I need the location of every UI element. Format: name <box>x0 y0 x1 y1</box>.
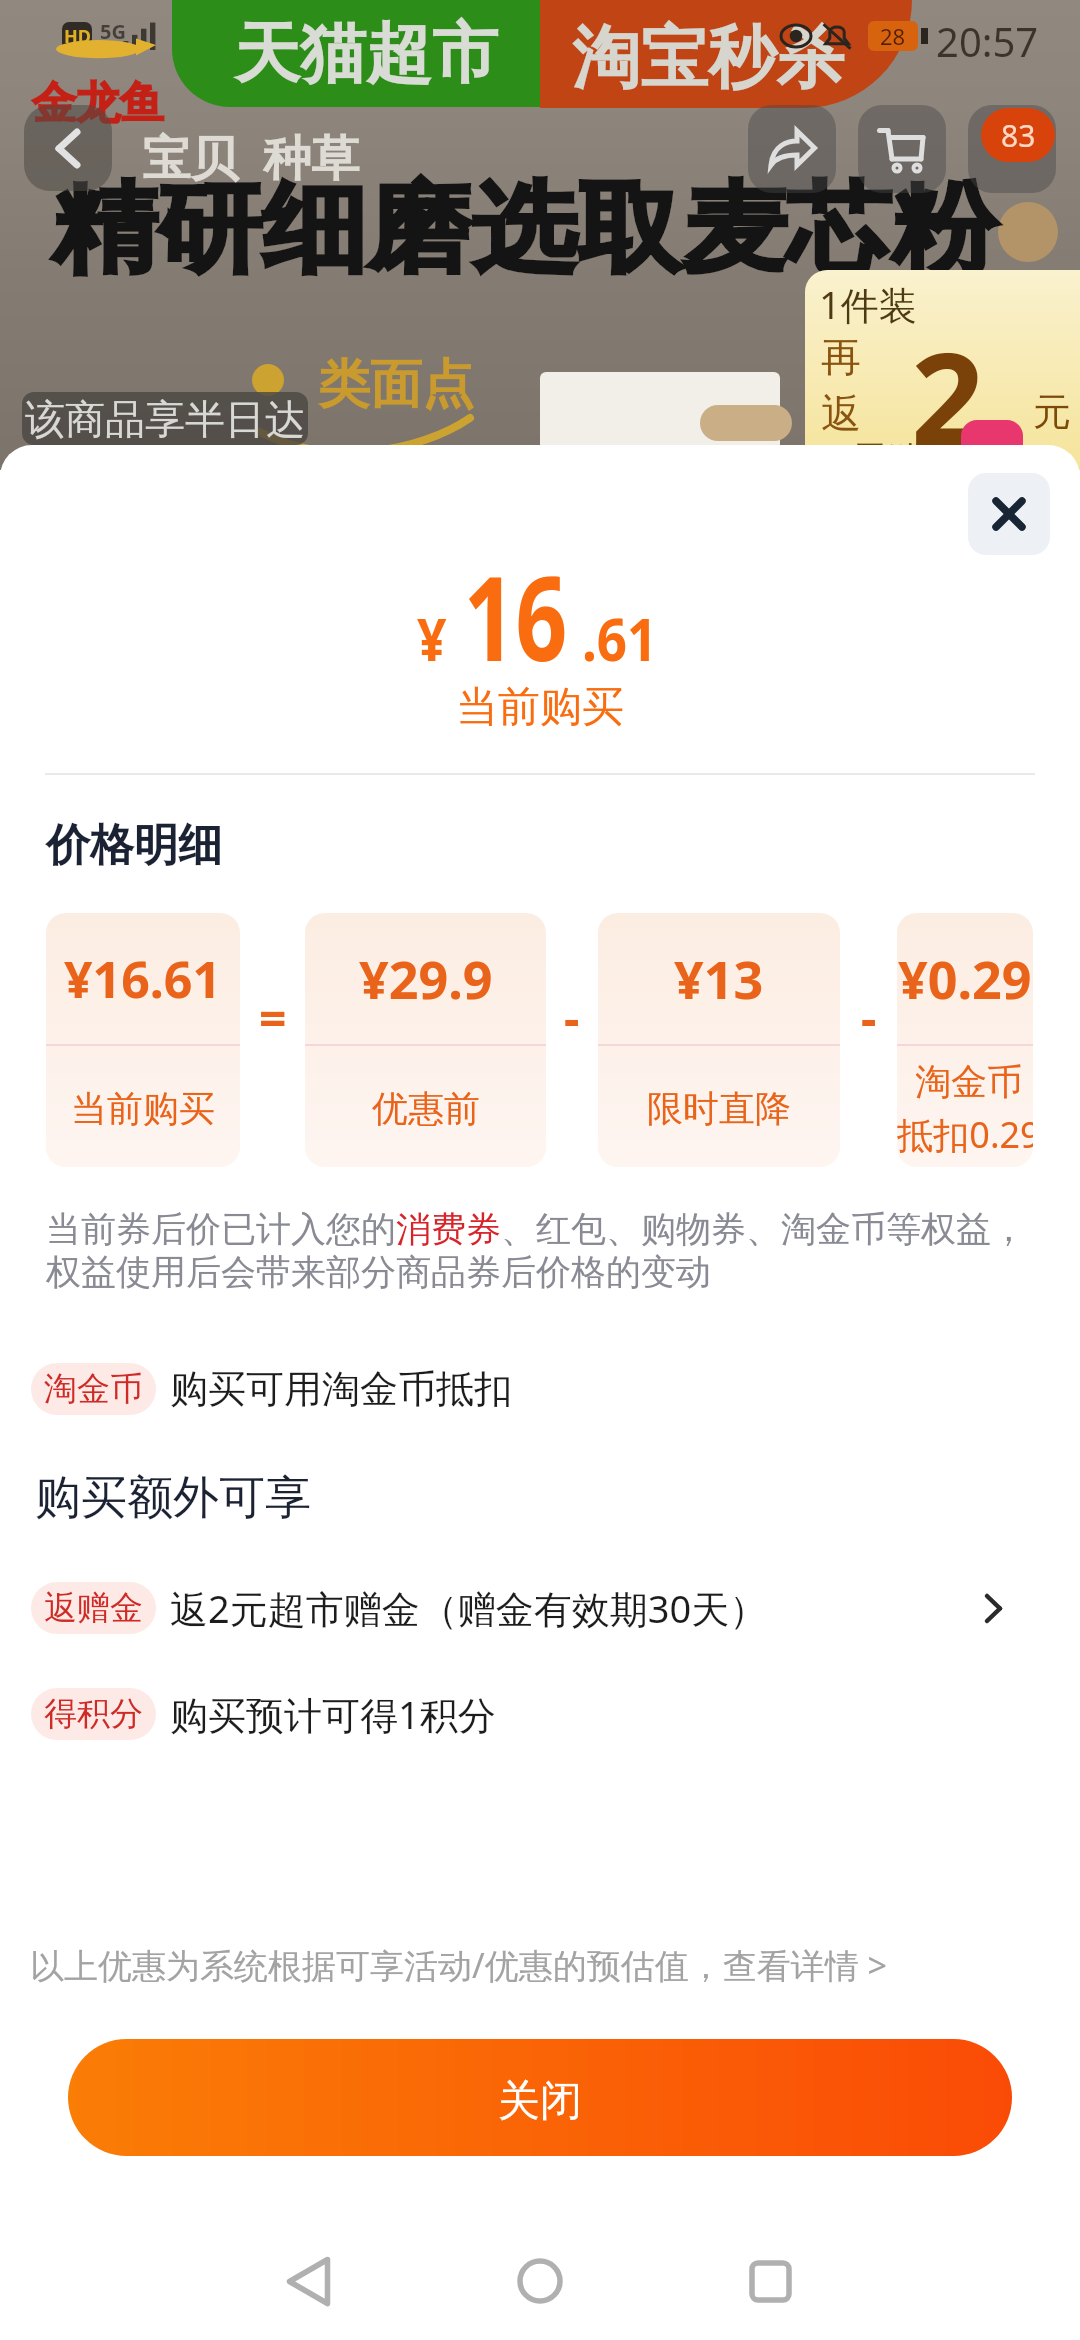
button[interactable]: 淘金币 <box>31 1362 1034 1416</box>
staticText: 精研细磨选取麦芯粉 <box>52 168 996 291</box>
staticText: 购买可用淘金币抵扣 <box>170 1365 512 1413</box>
staticText: = <box>259 985 287 1050</box>
staticText: 淘金币 抵扣0.29 <box>897 1059 1033 1159</box>
staticText: 再 返 <box>821 332 861 439</box>
staticText: 以上优惠为系统根据可享活动/优惠的预估值，查看详情 > <box>30 1942 887 1988</box>
button[interactable]: 得积分 <box>31 1687 1034 1741</box>
button[interactable]: Back <box>24 105 112 191</box>
button[interactable]: Share <box>748 105 836 193</box>
staticText: 金龙鱼 <box>32 76 164 131</box>
staticText: - <box>861 985 877 1050</box>
staticText: 2 <box>911 308 985 470</box>
staticText: 价格明细 <box>46 818 222 873</box>
staticText: 得积分 <box>44 1693 143 1735</box>
staticText: 购买预计可得1积分 <box>170 1688 496 1740</box>
staticText: 当前购买 <box>0 681 1080 734</box>
staticText: ¥16.61 <box>64 945 222 1013</box>
button[interactable]: Home <box>480 2221 600 2340</box>
staticText: ¥29.9 <box>359 943 493 1014</box>
button[interactable]: Cart <box>858 105 946 193</box>
staticText: 淘宝秒杀 <box>572 16 844 102</box>
staticText: 83 <box>1001 115 1036 156</box>
button[interactable]: ¥29.9 <box>305 913 546 1167</box>
button[interactable]: ¥13 <box>598 913 840 1167</box>
button[interactable]: 返赠金 <box>31 1581 1034 1635</box>
button[interactable]: Recents <box>710 2221 830 2340</box>
staticText: 关闭 <box>498 2075 582 2128</box>
staticText: 淘金币 <box>44 1368 143 1410</box>
staticText: 20:57 <box>936 14 1039 68</box>
staticText: ¥13 <box>674 943 764 1014</box>
staticText: 购买额外可享 <box>35 1469 311 1527</box>
staticText: 5G <box>100 18 126 45</box>
staticText: 天猫超市 <box>851 436 1003 470</box>
button[interactable]: ¥0.29 <box>897 913 1033 1167</box>
staticText: HD <box>64 24 91 49</box>
staticText: 该商品享半日达 <box>25 394 305 444</box>
button[interactable]: More <box>968 105 1056 193</box>
staticText: 当前券后价已计入您的消费券、红包、购物券、淘金币等权益， 权益使用后会带来部分商… <box>46 1207 1026 1295</box>
staticText: 28 <box>880 21 906 51</box>
staticText: 天猫超市 <box>234 12 498 95</box>
button[interactable]: 关闭 <box>68 2039 1012 2156</box>
staticText: 限时直降 <box>647 1086 791 1131</box>
button[interactable]: ¥16.61 <box>46 913 240 1167</box>
staticText: 返赠金 <box>44 1587 143 1629</box>
staticText: .61 <box>582 597 658 679</box>
staticText: 宝贝 种草 <box>142 124 359 190</box>
staticText: 返2元超市赠金（赠金有效期30天） <box>170 1582 768 1634</box>
staticText: 当前购买 <box>71 1086 215 1131</box>
button[interactable]: Back <box>248 2221 368 2340</box>
staticText: ¥0.29 <box>898 943 1032 1014</box>
staticText: 1件装 <box>819 278 917 330</box>
staticText: ¥ <box>417 597 447 679</box>
staticText: - <box>564 985 580 1050</box>
button[interactable]: Close <box>968 473 1050 555</box>
staticText: 类面点 <box>318 352 474 418</box>
staticText: 优惠前 <box>372 1086 480 1131</box>
staticText: 16 <box>464 537 567 695</box>
staticText: 元 <box>1033 388 1071 436</box>
